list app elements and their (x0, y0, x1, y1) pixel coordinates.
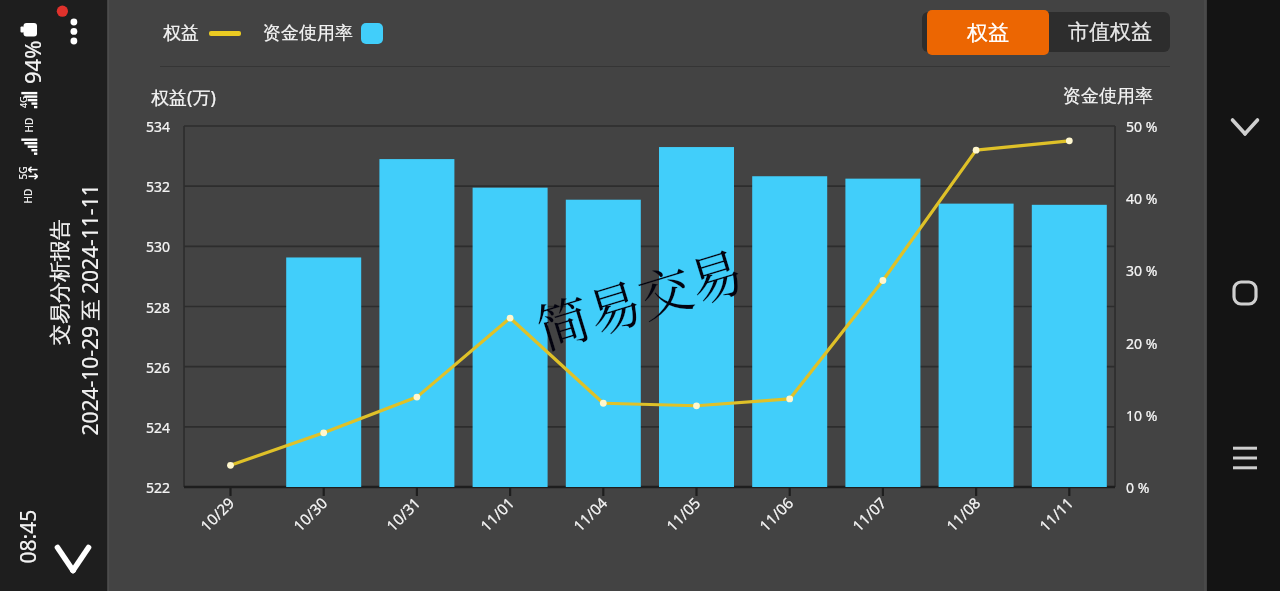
staticText: 08:45 (13, 509, 42, 563)
staticText: HD (20, 188, 34, 203)
staticText: 11/04 (569, 493, 611, 535)
button[interactable]: Back (1221, 103, 1269, 151)
staticText: 权益 (967, 20, 1009, 46)
button[interactable]: More options (52, 0, 86, 52)
staticText: 20 % (1126, 334, 1158, 353)
button[interactable]: 市值权益 (1049, 12, 1170, 52)
staticText: 交易分析报告 (47, 219, 73, 345)
staticText: 10 % (1126, 406, 1158, 425)
staticText: 11/07 (848, 493, 890, 535)
staticText: 11/06 (755, 493, 797, 535)
staticText: HD (21, 117, 35, 132)
staticText: 资金使用率 (263, 22, 353, 45)
staticText: 10/31 (382, 493, 424, 535)
button[interactable]: 权益 (927, 10, 1049, 55)
staticText: 526 (146, 358, 171, 377)
staticText: 资金使用率 (1063, 85, 1153, 108)
staticText: 5G (15, 166, 29, 179)
staticText: 权益 (163, 22, 199, 45)
staticText: 简易交易 (526, 230, 751, 364)
staticText: 30 % (1126, 261, 1158, 280)
staticText: 534 (146, 117, 171, 136)
staticText: 11/01 (476, 493, 518, 535)
staticText: 522 (146, 478, 171, 497)
staticText: 528 (146, 298, 171, 317)
staticText: 94% (17, 40, 47, 84)
button[interactable]: Home (1221, 269, 1269, 317)
staticText: 524 (146, 418, 171, 437)
staticText: 2024-10-29 至 2024-11-11 (75, 183, 104, 435)
button[interactable]: Recent apps (1221, 434, 1269, 482)
staticText: 532 (146, 177, 171, 196)
staticText: 0 % (1126, 478, 1150, 497)
staticText: 权益(万) (151, 85, 216, 110)
button[interactable]: Back (50, 536, 96, 582)
staticText: 530 (146, 237, 171, 256)
staticText: 10/30 (289, 493, 331, 535)
staticText: 11/08 (942, 493, 984, 535)
staticText: 11/05 (662, 493, 704, 535)
staticText: 10/29 (196, 493, 238, 535)
staticText: 11/11 (1035, 493, 1077, 535)
staticText: 50 % (1126, 117, 1158, 136)
staticText: 40 % (1126, 189, 1158, 208)
staticText: 4G (17, 96, 29, 108)
staticText: 市值权益 (1068, 19, 1152, 45)
